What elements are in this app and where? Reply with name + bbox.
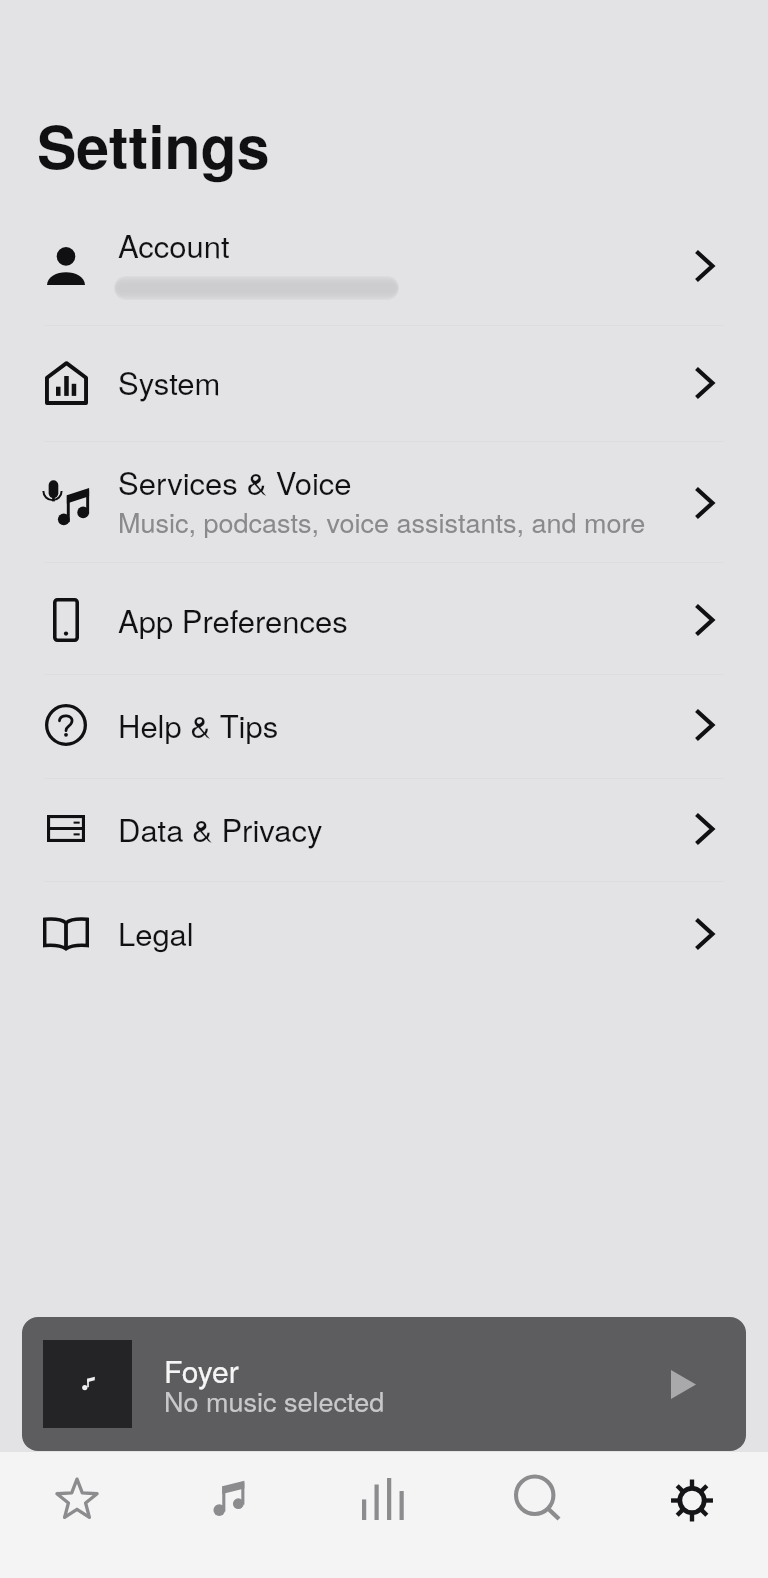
staticText: Settings <box>37 103 270 187</box>
staticText: Help & Tips <box>118 702 279 746</box>
button[interactable]: Account <box>0 199 768 324</box>
staticText: Data & Privacy <box>118 806 323 850</box>
button[interactable]: Data & Privacy <box>0 777 768 881</box>
button[interactable]: Legal <box>0 881 768 986</box>
button[interactable]: Help & Tips <box>0 673 768 777</box>
button[interactable]: Play <box>638 1341 724 1427</box>
button[interactable]: Now Playing <box>307 1452 461 1578</box>
staticText: Legal <box>118 910 194 954</box>
staticText: App Preferences <box>118 597 348 641</box>
staticText: Music, podcasts, voice assistants, and m… <box>118 502 646 541</box>
button[interactable]: App Preferences <box>0 561 768 672</box>
staticText: Services & Voice <box>118 459 352 503</box>
button[interactable]: Favorites <box>0 1452 154 1578</box>
button[interactable]: Music <box>155 1452 309 1578</box>
button[interactable]: Settings <box>615 1452 768 1578</box>
button[interactable]: Search <box>461 1452 615 1578</box>
button[interactable]: Services & Voice <box>0 443 768 562</box>
button[interactable]: Foyer <box>22 1317 746 1451</box>
staticText: Foyer <box>164 1349 239 1392</box>
button[interactable]: System <box>0 324 768 442</box>
staticText: System <box>118 359 221 403</box>
staticText: Account <box>118 222 230 266</box>
staticText: No music selected <box>164 1381 385 1420</box>
